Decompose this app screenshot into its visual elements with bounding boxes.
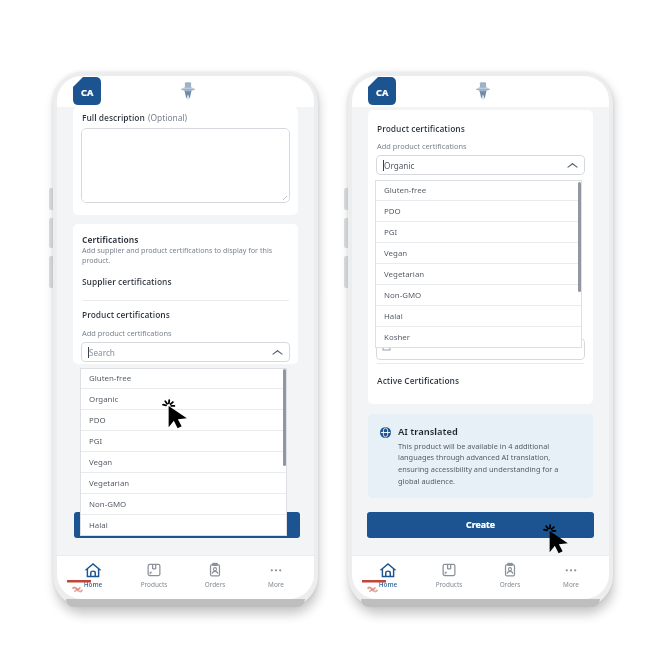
button[interactable]: PDO [80,410,287,431]
staticText: (Optional) [148,112,188,123]
button[interactable]: More [247,563,305,589]
button[interactable]: Products [125,563,183,589]
staticText: Vegan [384,248,408,259]
staticText: Orders [481,580,539,589]
button[interactable]: Vegetarian [375,264,582,285]
button[interactable]: More [542,563,600,589]
staticText: Product certifications [82,309,170,320]
staticText: Add supplier and product certifications … [82,245,273,265]
staticText: Add product certifications [377,141,467,151]
staticText: Organic [384,160,415,171]
button[interactable]: CA account [73,77,101,105]
staticText: Gluten-free [384,185,427,196]
staticText: CA [81,86,94,99]
button[interactable]: Home [64,563,122,589]
button[interactable]: Home [359,563,417,589]
button[interactable]: PGI [80,431,287,452]
staticText: Vegetarian [89,478,130,489]
staticText: Organic [89,394,119,405]
button[interactable]: Orders [186,563,244,589]
staticText: More [247,580,305,589]
staticText: PGI [89,436,103,447]
button[interactable]: Kosher [375,327,582,348]
button[interactable] [74,512,300,538]
button[interactable]: Halal [375,306,582,327]
staticText: PGI [384,227,398,238]
staticText: Product certifications [377,123,465,134]
staticText: Halal [384,311,403,322]
staticText: Vegan [89,457,113,468]
staticText: Search [89,347,115,358]
button[interactable] [81,128,290,203]
button[interactable]: Organic [80,389,287,410]
button[interactable]: Create [367,512,594,538]
staticText: Add product certifications [82,328,172,338]
button[interactable]: Non-GMO [375,285,582,306]
button[interactable]: Products [420,563,478,589]
button[interactable]: Vegan [80,452,287,473]
button[interactable]: Halal [80,515,287,536]
staticText: CA [376,86,389,99]
button[interactable]: Organic [376,155,585,175]
staticText: This product will be available in 4 addi… [398,441,581,486]
staticText: Products [420,580,478,589]
staticText: Vegetarian [384,269,425,280]
staticText: PDO [89,415,106,426]
button[interactable]: Non-GMO [80,494,287,515]
staticText: Home [64,580,122,589]
staticText: Halal [89,520,108,531]
staticText: Active Certifications [377,375,460,386]
staticText: PDO [384,206,401,217]
staticText: Create [466,519,495,531]
button[interactable]: Vegetarian [80,473,287,494]
staticText: Gluten-free [89,373,132,384]
staticText: More [542,580,600,589]
button[interactable]: PDO [375,201,582,222]
staticText: Non-GMO [89,499,127,510]
button[interactable]: PGI [375,222,582,243]
button[interactable]: Gluten-free [80,368,287,389]
staticText: Non-GMO [384,290,422,301]
staticText: Home [359,580,417,589]
staticText: Full description [82,112,148,123]
staticText: AI translated [398,425,458,438]
button[interactable]: CA account [368,77,396,105]
staticText: Supplier certifications [82,276,172,287]
staticText: Kosher [384,332,411,343]
staticText: Orders [186,580,244,589]
button[interactable]: Search [81,342,290,362]
other: Brand logo [181,81,195,100]
staticText: Certifications [82,234,139,245]
other: Brand logo [476,81,490,100]
button[interactable]: Gluten-free [375,180,582,201]
other: Collapse list [273,348,282,357]
button[interactable]: Orders [481,563,539,589]
staticText: Products [125,580,183,589]
button[interactable]: Vegan [375,243,582,264]
other: Collapse list [568,161,577,170]
